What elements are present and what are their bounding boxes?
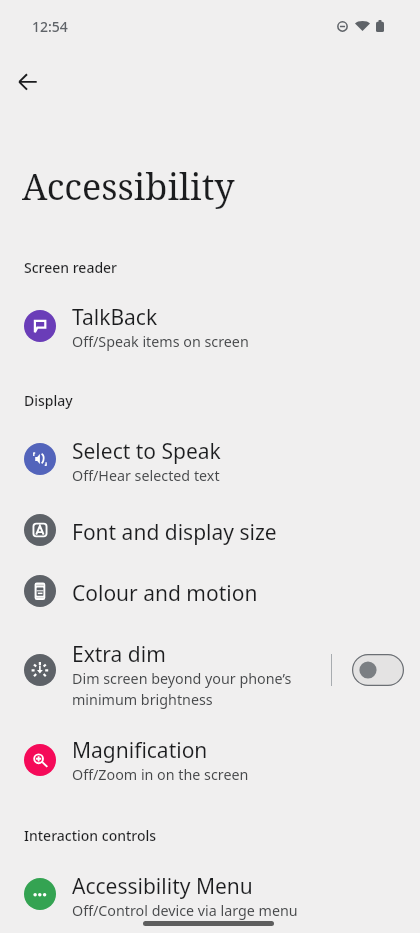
button[interactable] — [0, 563, 420, 619]
staticText: Off/Hear selected text — [72, 466, 220, 485]
staticText: Colour and motion — [72, 579, 258, 608]
staticText: Magnification — [72, 736, 208, 765]
staticText: Interaction controls — [24, 826, 157, 845]
button[interactable] — [0, 298, 420, 354]
staticText: Display — [24, 391, 73, 410]
button[interactable] — [0, 732, 420, 788]
button[interactable]: Navigate up — [4, 58, 52, 106]
button[interactable] — [0, 866, 420, 922]
staticText: Off/Control device via large menu — [72, 901, 298, 920]
button[interactable] — [0, 632, 330, 708]
staticText: Extra dim — [72, 640, 166, 669]
staticText: Off/Speak items on screen — [72, 332, 249, 351]
button[interactable]: Extra dim switch, off — [352, 654, 404, 686]
staticText: Screen reader — [24, 258, 118, 277]
staticText: Font and display size — [72, 518, 277, 547]
staticText: Accessibility — [22, 162, 235, 211]
staticText: TalkBack — [72, 303, 158, 332]
staticText: 12:54 — [32, 17, 68, 36]
staticText: Dim screen beyond your phone’s minimum b… — [72, 669, 292, 709]
staticText: Off/Zoom in on the screen — [72, 765, 249, 784]
staticText: Select to Speak — [72, 437, 221, 466]
button[interactable] — [0, 431, 420, 487]
button[interactable] — [0, 502, 420, 558]
staticText: Accessibility Menu — [72, 872, 253, 901]
